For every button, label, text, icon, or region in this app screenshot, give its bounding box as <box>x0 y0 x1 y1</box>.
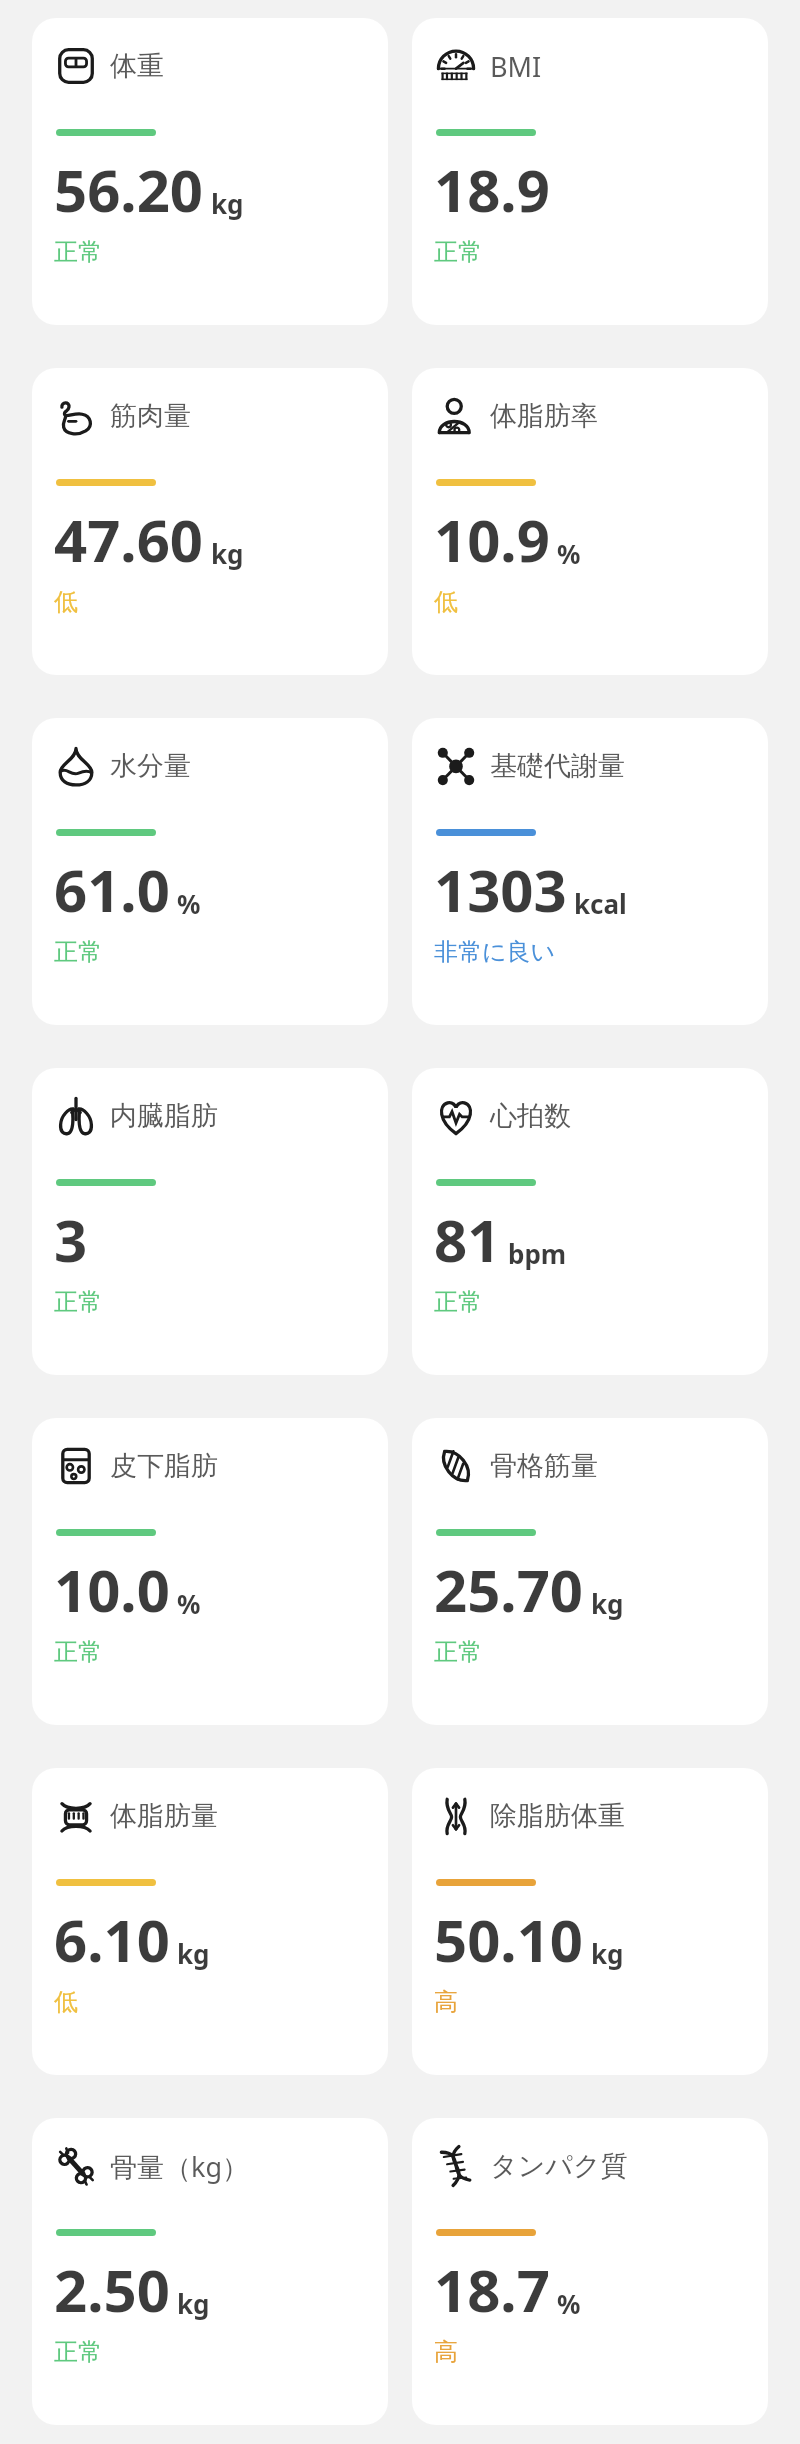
staticText: 体重 <box>110 49 164 83</box>
staticText: 81 <box>434 1200 501 1279</box>
staticText: 骨量（kg） <box>110 2148 250 2185</box>
staticText: kg <box>211 536 244 571</box>
staticText: 6.10 <box>54 1900 170 1979</box>
staticText: 50.10 <box>434 1900 584 1979</box>
staticText: 低 <box>54 587 78 617</box>
staticText: 正常 <box>434 1637 482 1667</box>
staticText: 56.20 <box>54 150 204 229</box>
button[interactable]: 骨量（kg） <box>32 2118 388 2425</box>
staticText: 10.0 <box>54 1550 170 1629</box>
staticText: kg <box>177 1936 210 1971</box>
staticText: kg <box>591 1936 624 1971</box>
staticText: 3 <box>54 1200 88 1279</box>
staticText: 基礎代謝量 <box>490 749 625 783</box>
staticText: 10.9 <box>434 500 550 579</box>
button[interactable]: 体脂肪量 <box>32 1768 388 2075</box>
staticText: % <box>557 536 581 571</box>
staticText: 18.9 <box>434 150 550 229</box>
staticText: 正常 <box>434 1287 482 1317</box>
button[interactable]: 皮下脂肪 <box>32 1418 388 1725</box>
staticText: 47.60 <box>54 500 204 579</box>
staticText: kcal <box>574 886 627 921</box>
button[interactable]: 内臓脂肪 <box>32 1068 388 1375</box>
staticText: BMI <box>490 48 542 85</box>
staticText: bpm <box>508 1236 567 1271</box>
button[interactable]: 骨格筋量 <box>412 1418 768 1725</box>
staticText: 正常 <box>54 237 102 267</box>
button[interactable]: 水分量 <box>32 718 388 1025</box>
staticText: kg <box>177 2286 210 2321</box>
staticText: % <box>177 1586 201 1621</box>
staticText: 水分量 <box>110 749 191 783</box>
staticText: 体脂肪量 <box>110 1799 218 1833</box>
staticText: 皮下脂肪 <box>110 1449 218 1483</box>
staticText: 正常 <box>54 2337 102 2367</box>
staticText: 非常に良い <box>434 937 556 967</box>
button[interactable]: タンパク質 <box>412 2118 768 2425</box>
button[interactable]: 基礎代謝量 <box>412 718 768 1025</box>
button[interactable]: BMI <box>412 18 768 325</box>
staticText: 正常 <box>54 1287 102 1317</box>
staticText: 25.70 <box>434 1550 584 1629</box>
staticText: タンパク質 <box>490 2149 628 2183</box>
staticText: 除脂肪体重 <box>490 1799 625 1833</box>
staticText: kg <box>591 1586 624 1621</box>
staticText: kg <box>211 186 244 221</box>
button[interactable]: 体重 <box>32 18 388 325</box>
button[interactable]: 除脂肪体重 <box>412 1768 768 2075</box>
staticText: % <box>177 886 201 921</box>
button[interactable]: 心拍数 <box>412 1068 768 1375</box>
staticText: 正常 <box>434 237 482 267</box>
staticText: 体脂肪率 <box>490 399 598 433</box>
staticText: 低 <box>434 587 458 617</box>
staticText: 1303 <box>434 850 567 929</box>
staticText: % <box>557 2286 581 2321</box>
staticText: 2.50 <box>54 2250 170 2329</box>
staticText: 心拍数 <box>490 1099 571 1133</box>
staticText: 18.7 <box>434 2250 550 2329</box>
button[interactable]: 筋肉量 <box>32 368 388 675</box>
staticText: 61.0 <box>54 850 170 929</box>
staticText: 高 <box>434 2337 458 2367</box>
button[interactable]: 体脂肪率 <box>412 368 768 675</box>
staticText: 筋肉量 <box>110 399 191 433</box>
staticText: 正常 <box>54 1637 102 1667</box>
staticText: 骨格筋量 <box>490 1449 598 1483</box>
staticText: 内臓脂肪 <box>110 1099 218 1133</box>
staticText: 低 <box>54 1987 78 2017</box>
staticText: 高 <box>434 1987 458 2017</box>
staticText: 正常 <box>54 937 102 967</box>
